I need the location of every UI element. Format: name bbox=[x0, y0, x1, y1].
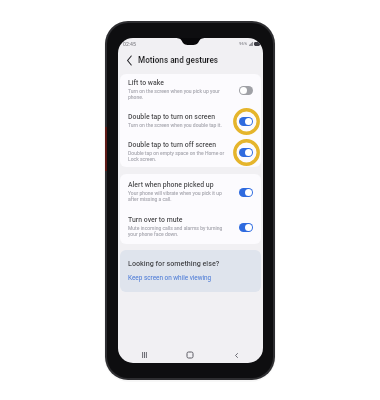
staticText: Your phone will vibrate when you pick it… bbox=[128, 190, 231, 202]
button[interactable]: Toggle on bbox=[231, 213, 261, 241]
button[interactable]: Double tap to turn on screen bbox=[120, 105, 261, 136]
button[interactable]: Double tap to turn off screen bbox=[120, 136, 261, 167]
staticText: Mute incoming calls and alarms by turnin… bbox=[128, 225, 231, 237]
staticText: Keep screen on while viewing bbox=[128, 274, 212, 282]
button[interactable]: recents bbox=[122, 347, 167, 363]
staticText: Alert when phone picked up bbox=[128, 181, 214, 189]
staticText: Double tap to turn off screen bbox=[128, 141, 217, 149]
button[interactable]: Turn over to mute bbox=[120, 209, 261, 244]
button[interactable]: back bbox=[213, 347, 259, 363]
staticText: Motions and gestures bbox=[138, 55, 219, 65]
button[interactable]: Toggle on bbox=[231, 138, 261, 166]
button[interactable]: Back bbox=[123, 54, 135, 66]
staticText: Turn on the screen when you double tap i… bbox=[128, 122, 222, 128]
button[interactable]: Looking for something else? bbox=[120, 250, 261, 292]
staticText: Lift to wake bbox=[128, 79, 164, 87]
button[interactable]: Toggle on bbox=[231, 107, 261, 135]
staticText: 96% bbox=[239, 41, 248, 46]
button[interactable]: Toggle off bbox=[231, 76, 261, 104]
staticText: Looking for something else? bbox=[128, 259, 220, 267]
button[interactable]: home bbox=[167, 347, 213, 363]
button[interactable]: Alert when phone picked up bbox=[120, 174, 261, 209]
staticText: Turn on the screen when you pick up your… bbox=[128, 88, 231, 100]
staticText: Double tap to turn on screen bbox=[128, 113, 216, 121]
staticText: Double tap on empty space on the Home or… bbox=[128, 150, 231, 162]
staticText: Turn over to mute bbox=[128, 216, 183, 224]
button[interactable]: Lift to wake bbox=[120, 74, 261, 105]
button[interactable]: Toggle on bbox=[231, 178, 261, 206]
staticText: 02:45 bbox=[123, 41, 136, 47]
